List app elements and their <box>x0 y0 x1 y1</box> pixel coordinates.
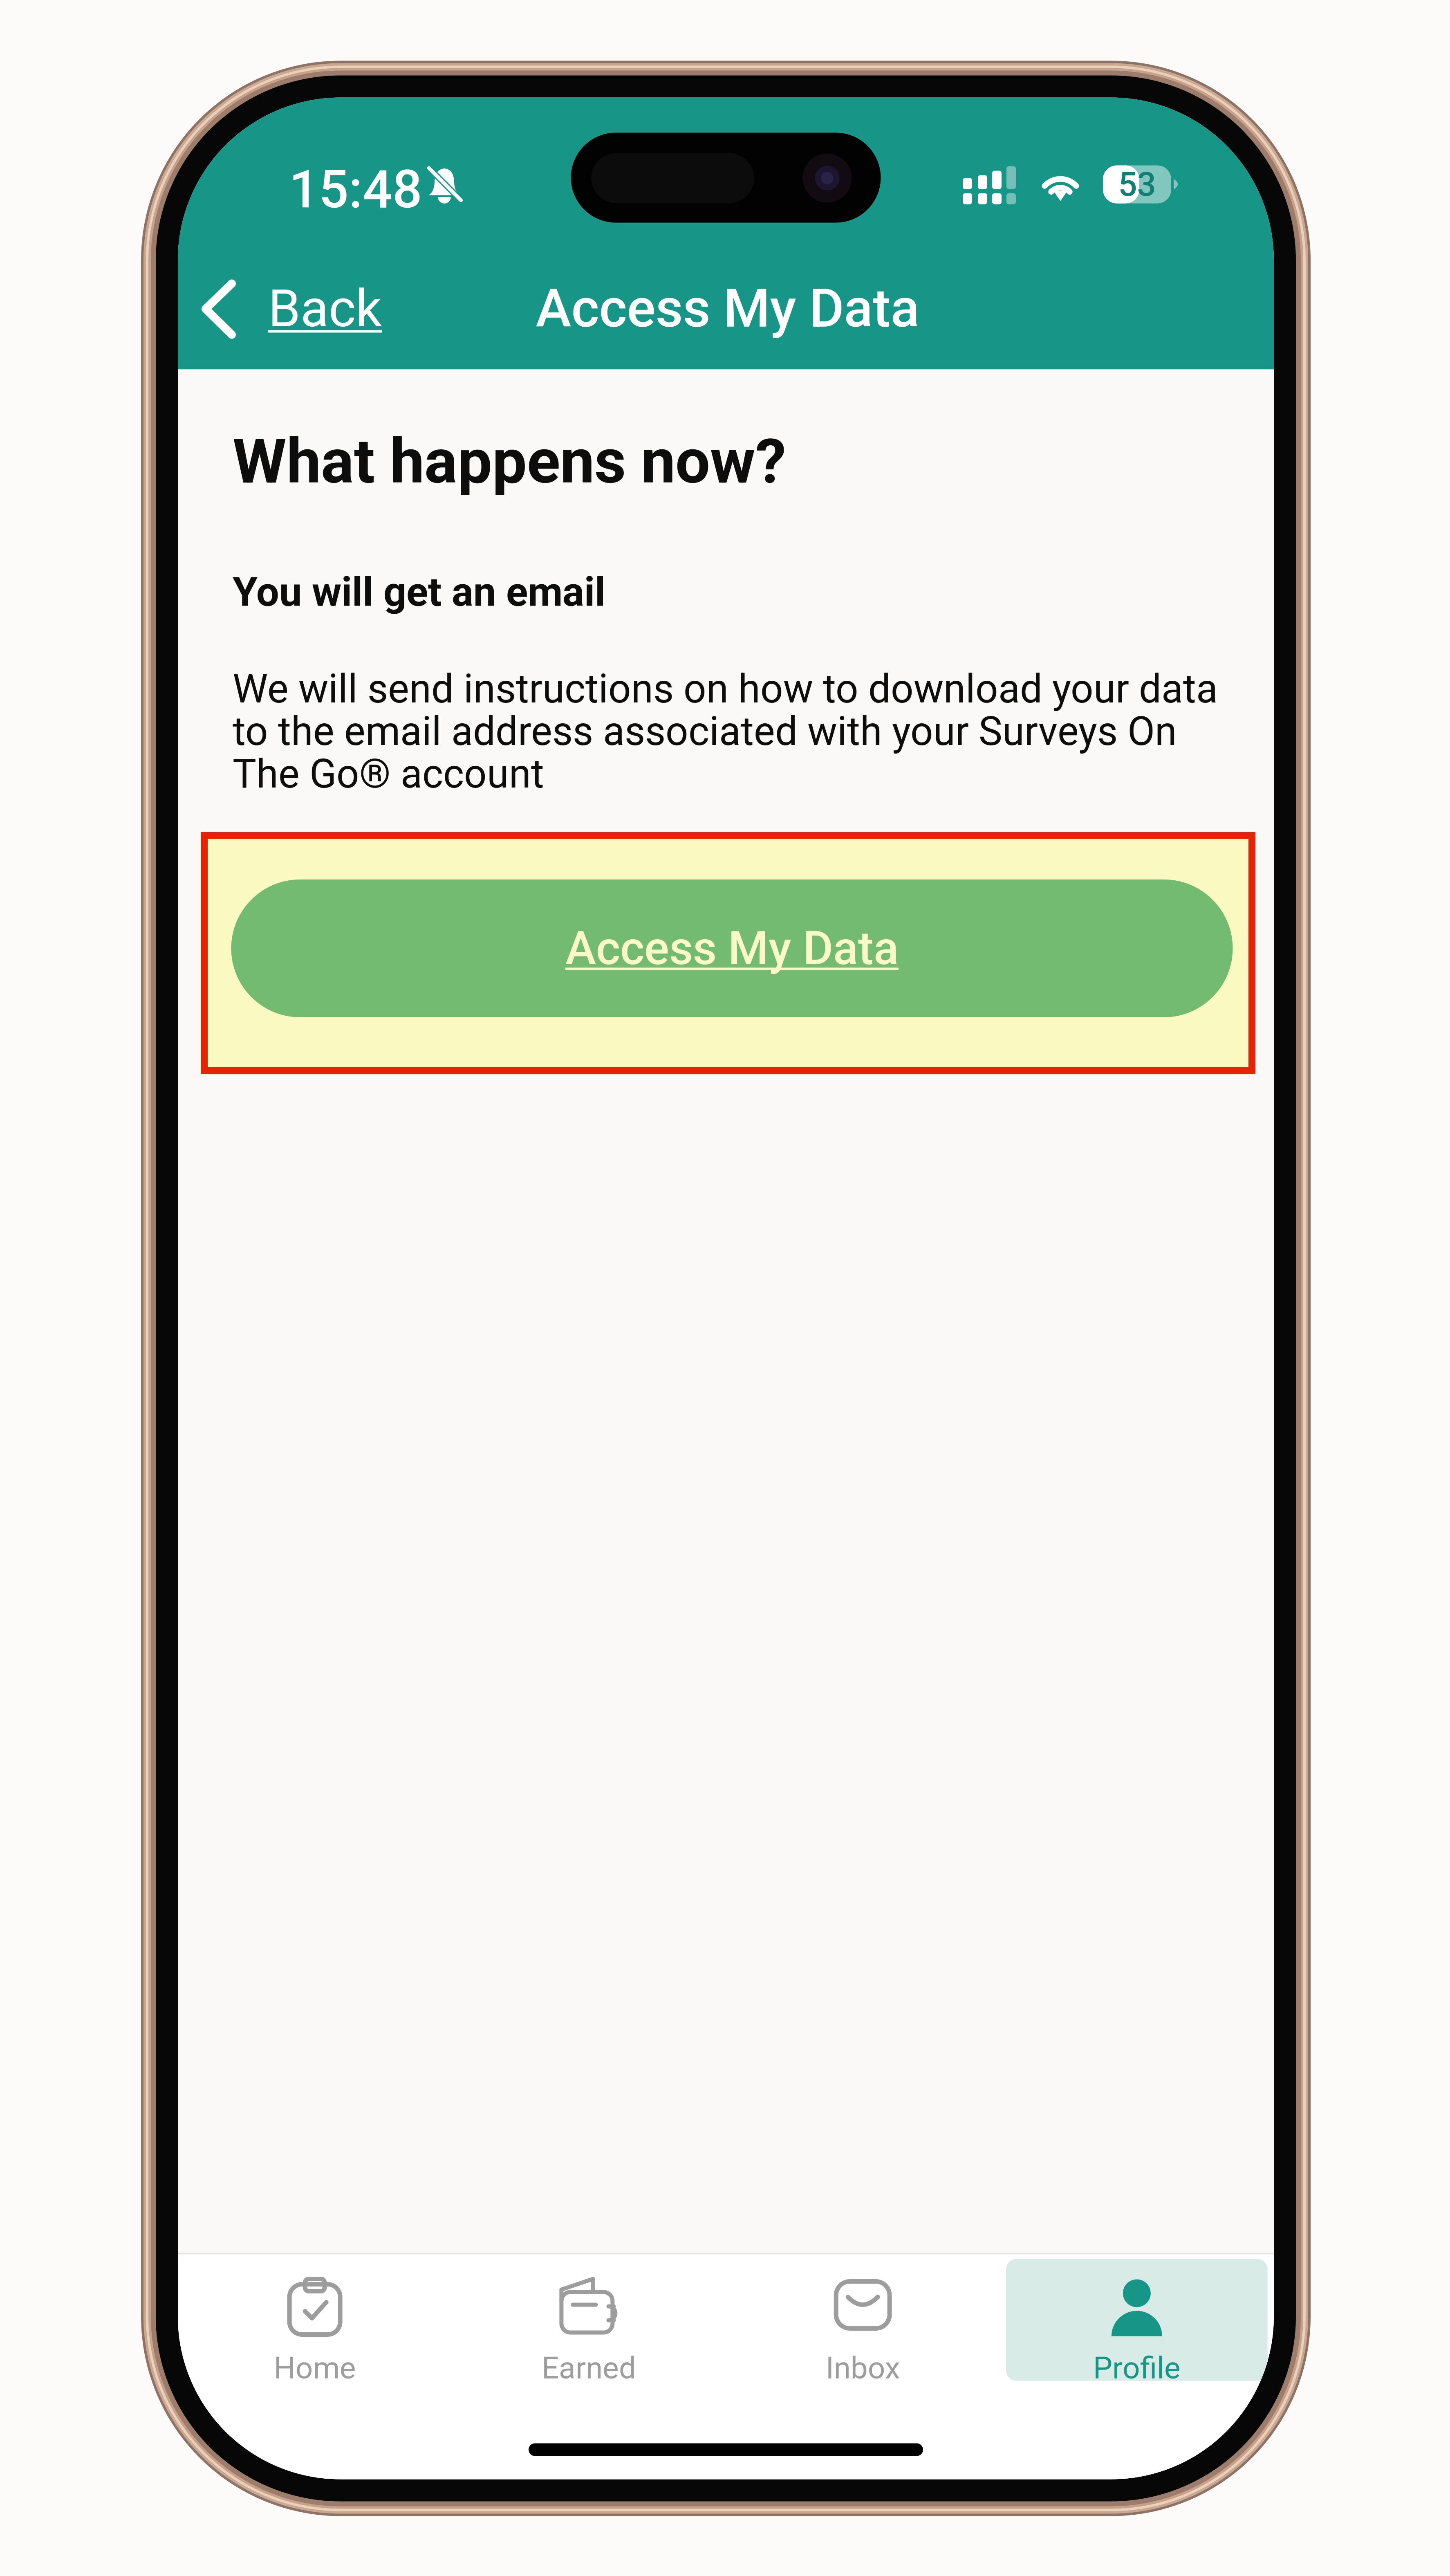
staticText: Earned <box>542 2350 636 2386</box>
staticText: You will get an email <box>233 568 605 616</box>
button[interactable]: Earned <box>458 2259 720 2381</box>
staticText: Home <box>274 2350 356 2386</box>
staticText: Access My Data <box>565 921 899 976</box>
staticText: We will send instructions on how to down… <box>233 666 1218 797</box>
button[interactable]: Back <box>178 237 411 369</box>
staticText: Profile <box>1093 2350 1181 2386</box>
staticText: What happens now? <box>233 425 786 498</box>
staticText: 53 <box>1118 165 1156 204</box>
staticText: Access My Data <box>536 277 919 340</box>
button[interactable]: Access My Data <box>201 832 1255 1074</box>
button[interactable]: Profile <box>1006 2259 1268 2381</box>
button[interactable]: Inbox <box>732 2259 994 2381</box>
staticText: 15:48 <box>289 159 422 220</box>
button[interactable]: Home <box>184 2259 446 2381</box>
staticText: Inbox <box>826 2350 900 2386</box>
staticText: Back <box>268 278 382 339</box>
